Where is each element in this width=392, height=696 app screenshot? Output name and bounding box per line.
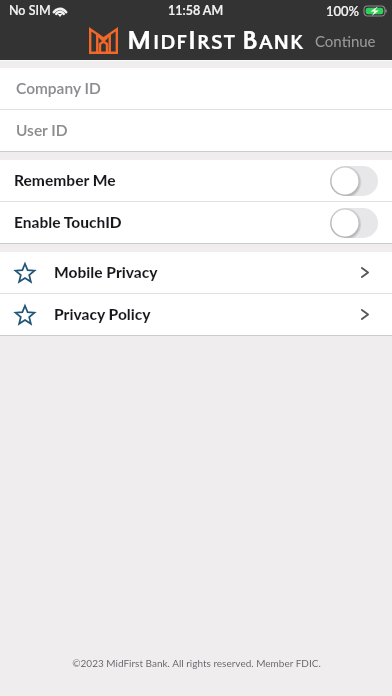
staticText: Mobile Privacy [54,263,158,282]
button[interactable]: Mobile Privacy [0,252,392,293]
button[interactable]: Continue [299,23,392,59]
button[interactable]: Remember Me [0,160,392,201]
button[interactable]: Toggle [330,208,378,238]
staticText: ANK [259,31,304,55]
staticText: Company ID [16,79,101,98]
staticText: 11:58 AM [168,3,224,18]
staticText: User ID [16,121,68,140]
staticText: No SIM [9,3,51,18]
staticText: M [127,26,153,56]
staticText: Enable TouchID [14,213,122,232]
staticText: Privacy Policy [54,305,151,324]
button[interactable]: User ID [0,110,392,151]
staticText: B [242,26,259,56]
button[interactable]: Privacy Policy [0,294,392,335]
button[interactable]: Enable TouchID [0,202,392,243]
staticText: Continue [315,32,376,50]
button[interactable]: Company ID [0,68,392,109]
button[interactable]: Toggle [330,166,378,196]
staticText: RST [197,31,237,55]
staticText: ©2023 MidFirst Bank. All rights reserved… [72,657,321,669]
staticText: Remember Me [14,171,116,190]
staticText: IDF [153,31,188,55]
staticText: I [188,26,197,56]
staticText: 100% [326,3,360,19]
